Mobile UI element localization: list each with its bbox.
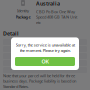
staticText: Note that your parcel will be held for t… [3, 73, 76, 89]
staticText: Package [15, 14, 30, 20]
button[interactable]: OK [15, 57, 75, 66]
staticText: etc [36, 20, 41, 25]
staticText: Australia [36, 0, 60, 7]
staticText: OK [41, 58, 48, 65]
staticText: Speed 408 GB TAN Unit [36, 14, 77, 20]
staticText: Sorry, the service is unavailable at the… [15, 42, 74, 53]
staticText: CBD Po Box One Way [36, 9, 75, 14]
staticText: Detail [3, 30, 19, 37]
staticText: Identity [17, 8, 29, 13]
